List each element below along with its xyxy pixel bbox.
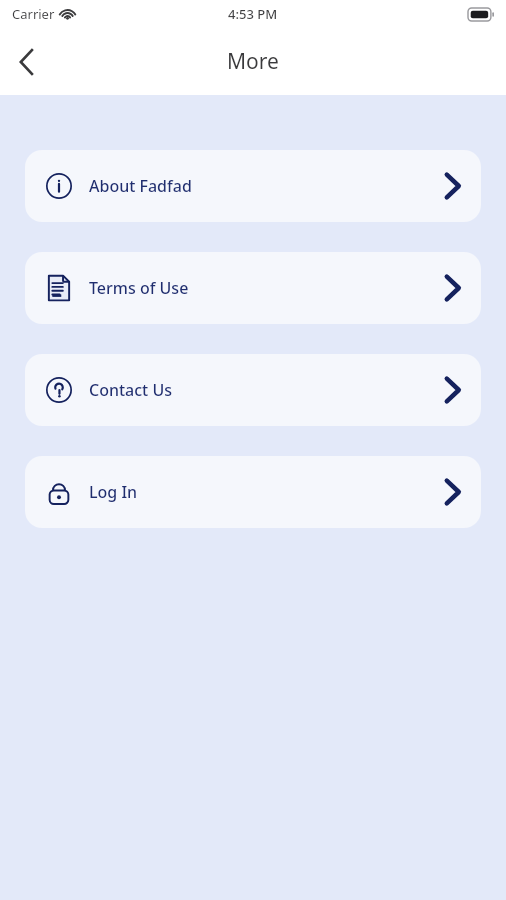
button[interactable]: Log In — [25, 456, 481, 528]
staticText: 4:53 PM — [228, 5, 278, 23]
staticText: Carrier — [12, 5, 55, 23]
button[interactable]: Back — [0, 36, 52, 88]
button[interactable]: Terms of Use — [25, 252, 481, 324]
staticText: About Fadfad — [89, 175, 192, 197]
staticText: Contact Us — [89, 379, 172, 401]
staticText: Log In — [89, 481, 138, 503]
staticText: More — [227, 47, 279, 76]
button[interactable]: Contact Us — [25, 354, 481, 426]
button[interactable]: About Fadfad — [25, 150, 481, 222]
staticText: Terms of Use — [89, 277, 189, 299]
